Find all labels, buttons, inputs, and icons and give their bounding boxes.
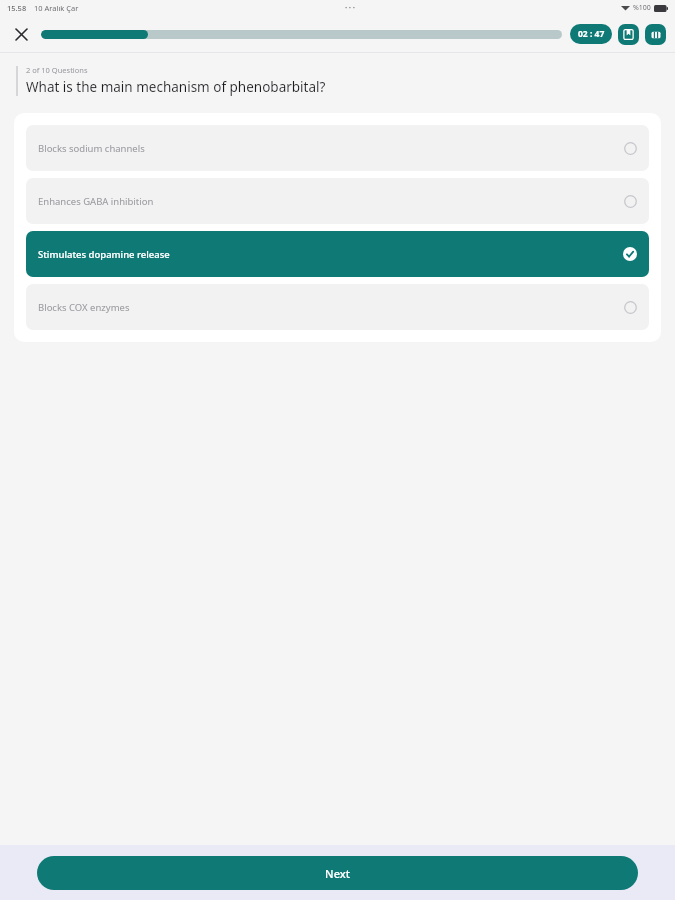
staticText: 15.58 (7, 3, 27, 13)
button[interactable]: 02 : 47 (570, 24, 612, 44)
button[interactable]: Settings (645, 24, 666, 45)
staticText: Blocks COX enzymes (38, 301, 130, 314)
button[interactable]: Enhances GABA inhibition (26, 178, 649, 224)
button[interactable]: Next (37, 856, 638, 890)
button[interactable]: Blocks COX enzymes (26, 284, 649, 330)
button[interactable]: Bookmark (618, 24, 639, 45)
staticText: 2 of 10 Questions (26, 65, 88, 75)
button[interactable]: Stimulates dopamine release (26, 231, 649, 277)
staticText: Stimulates dopamine release (38, 248, 170, 261)
staticText: Enhances GABA inhibition (38, 195, 154, 208)
staticText: %100 (633, 3, 651, 13)
button[interactable]: Close (9, 22, 33, 46)
staticText: What is the main mechanism of phenobarbi… (26, 78, 326, 96)
staticText: Next (325, 866, 350, 881)
staticText: 02 : 47 (578, 28, 605, 40)
staticText: 10 Aralık Çar (34, 3, 79, 13)
button[interactable]: Blocks sodium channels (26, 125, 649, 171)
staticText: • • • (345, 4, 355, 12)
staticText: Blocks sodium channels (38, 142, 145, 155)
